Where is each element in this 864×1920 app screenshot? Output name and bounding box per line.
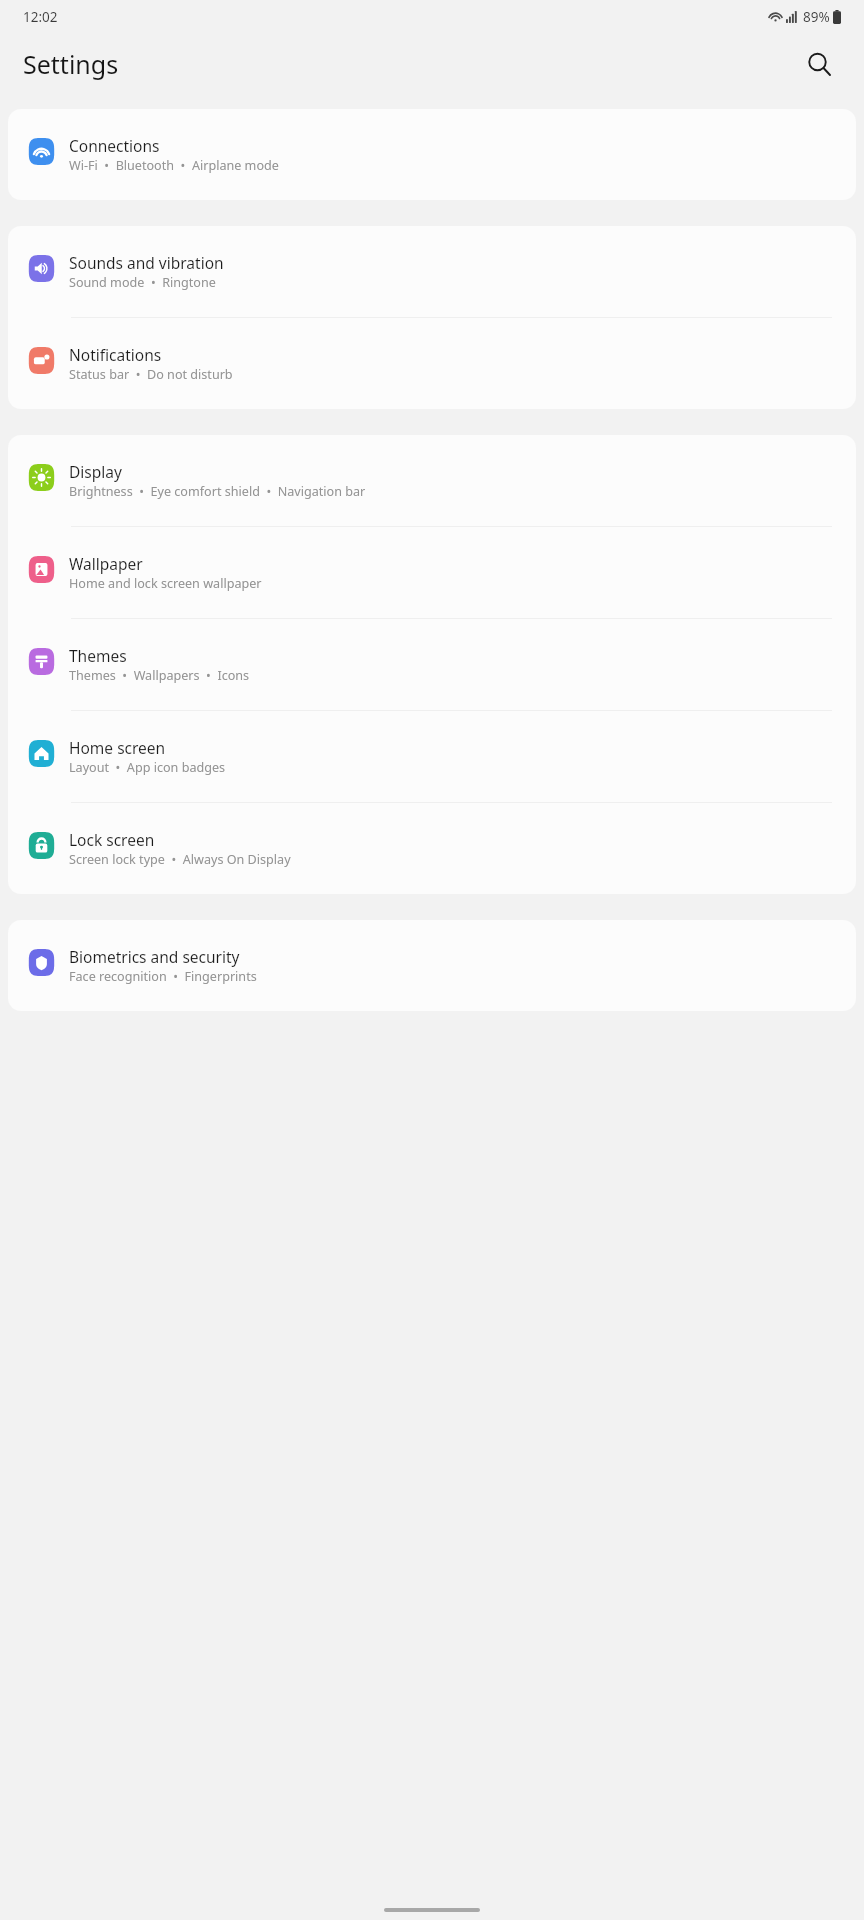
staticText: Lock screen xyxy=(69,829,155,850)
staticText: Status bar • Do not disturb xyxy=(69,366,233,383)
staticText: Connections xyxy=(69,135,160,156)
button[interactable]: Display xyxy=(8,435,856,526)
staticText: Settings xyxy=(23,47,119,81)
staticText: Display xyxy=(69,461,122,482)
staticText: Screen lock type • Always On Display xyxy=(69,851,291,868)
staticText: Sounds and vibration xyxy=(69,252,224,273)
staticText: Themes • Wallpapers • Icons xyxy=(69,667,250,684)
button[interactable]: Lock screen xyxy=(8,803,856,894)
button[interactable]: Notifications xyxy=(8,318,856,409)
staticText: Home and lock screen wallpaper xyxy=(69,575,262,592)
button[interactable]: Connections xyxy=(8,109,856,200)
staticText: Notifications xyxy=(69,344,162,365)
staticText: Biometrics and security xyxy=(69,946,240,967)
button[interactable]: Sounds and vibration xyxy=(8,226,856,317)
staticText: Home screen xyxy=(69,737,166,758)
button[interactable]: Home screen xyxy=(8,711,856,802)
staticText: 12:02 xyxy=(23,8,58,26)
staticText: Sound mode • Ringtone xyxy=(69,274,216,291)
staticText: Wallpaper xyxy=(69,553,143,574)
button[interactable]: Themes xyxy=(8,619,856,710)
button[interactable]: Biometrics and security xyxy=(8,920,856,1011)
staticText: Face recognition • Fingerprints xyxy=(69,968,257,985)
button[interactable]: Search xyxy=(797,42,841,86)
staticText: Themes xyxy=(69,645,127,666)
staticText: Layout • App icon badges xyxy=(69,759,226,776)
staticText: 89% xyxy=(803,8,830,26)
staticText: Brightness • Eye comfort shield • Naviga… xyxy=(69,483,366,500)
button[interactable]: Wallpaper xyxy=(8,527,856,618)
staticText: Wi-Fi • Bluetooth • Airplane mode xyxy=(69,157,279,174)
